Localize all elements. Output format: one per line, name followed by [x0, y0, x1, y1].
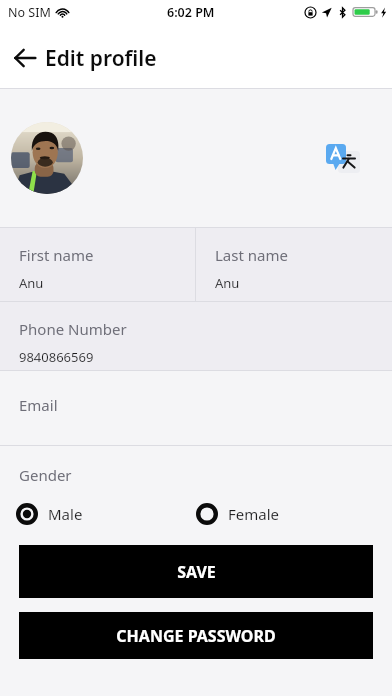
staticText: 6:02 PM [167, 4, 215, 21]
staticText: Edit profile [45, 44, 157, 73]
button[interactable]: SAVE [19, 545, 373, 598]
button[interactable]: CHANGE PASSWORD [19, 612, 373, 659]
button[interactable]: Translate [322, 139, 364, 181]
button[interactable]: First name [0, 228, 195, 301]
staticText: Phone Number [19, 319, 127, 339]
button[interactable]: Female [196, 503, 280, 525]
staticText: SAVE [177, 561, 216, 583]
staticText: Anu [19, 274, 44, 292]
staticText: CHANGE PASSWORD [116, 625, 276, 647]
staticText: First name [19, 245, 94, 265]
staticText: 9840866569 [19, 348, 94, 366]
button[interactable]: Profile photo [11, 122, 83, 194]
staticText: Male [48, 504, 83, 524]
staticText: Email [19, 395, 58, 415]
button[interactable]: Email [0, 371, 392, 445]
button[interactable]: Last name [196, 228, 392, 301]
button[interactable]: Back [6, 39, 44, 77]
button[interactable]: Phone Number [0, 302, 392, 370]
staticText: No SIM [8, 4, 51, 21]
staticText: Anu [215, 274, 240, 292]
button[interactable]: Male [16, 503, 83, 525]
staticText: Gender [19, 465, 72, 485]
staticText: Female [228, 504, 280, 524]
staticText: Last name [215, 245, 288, 265]
